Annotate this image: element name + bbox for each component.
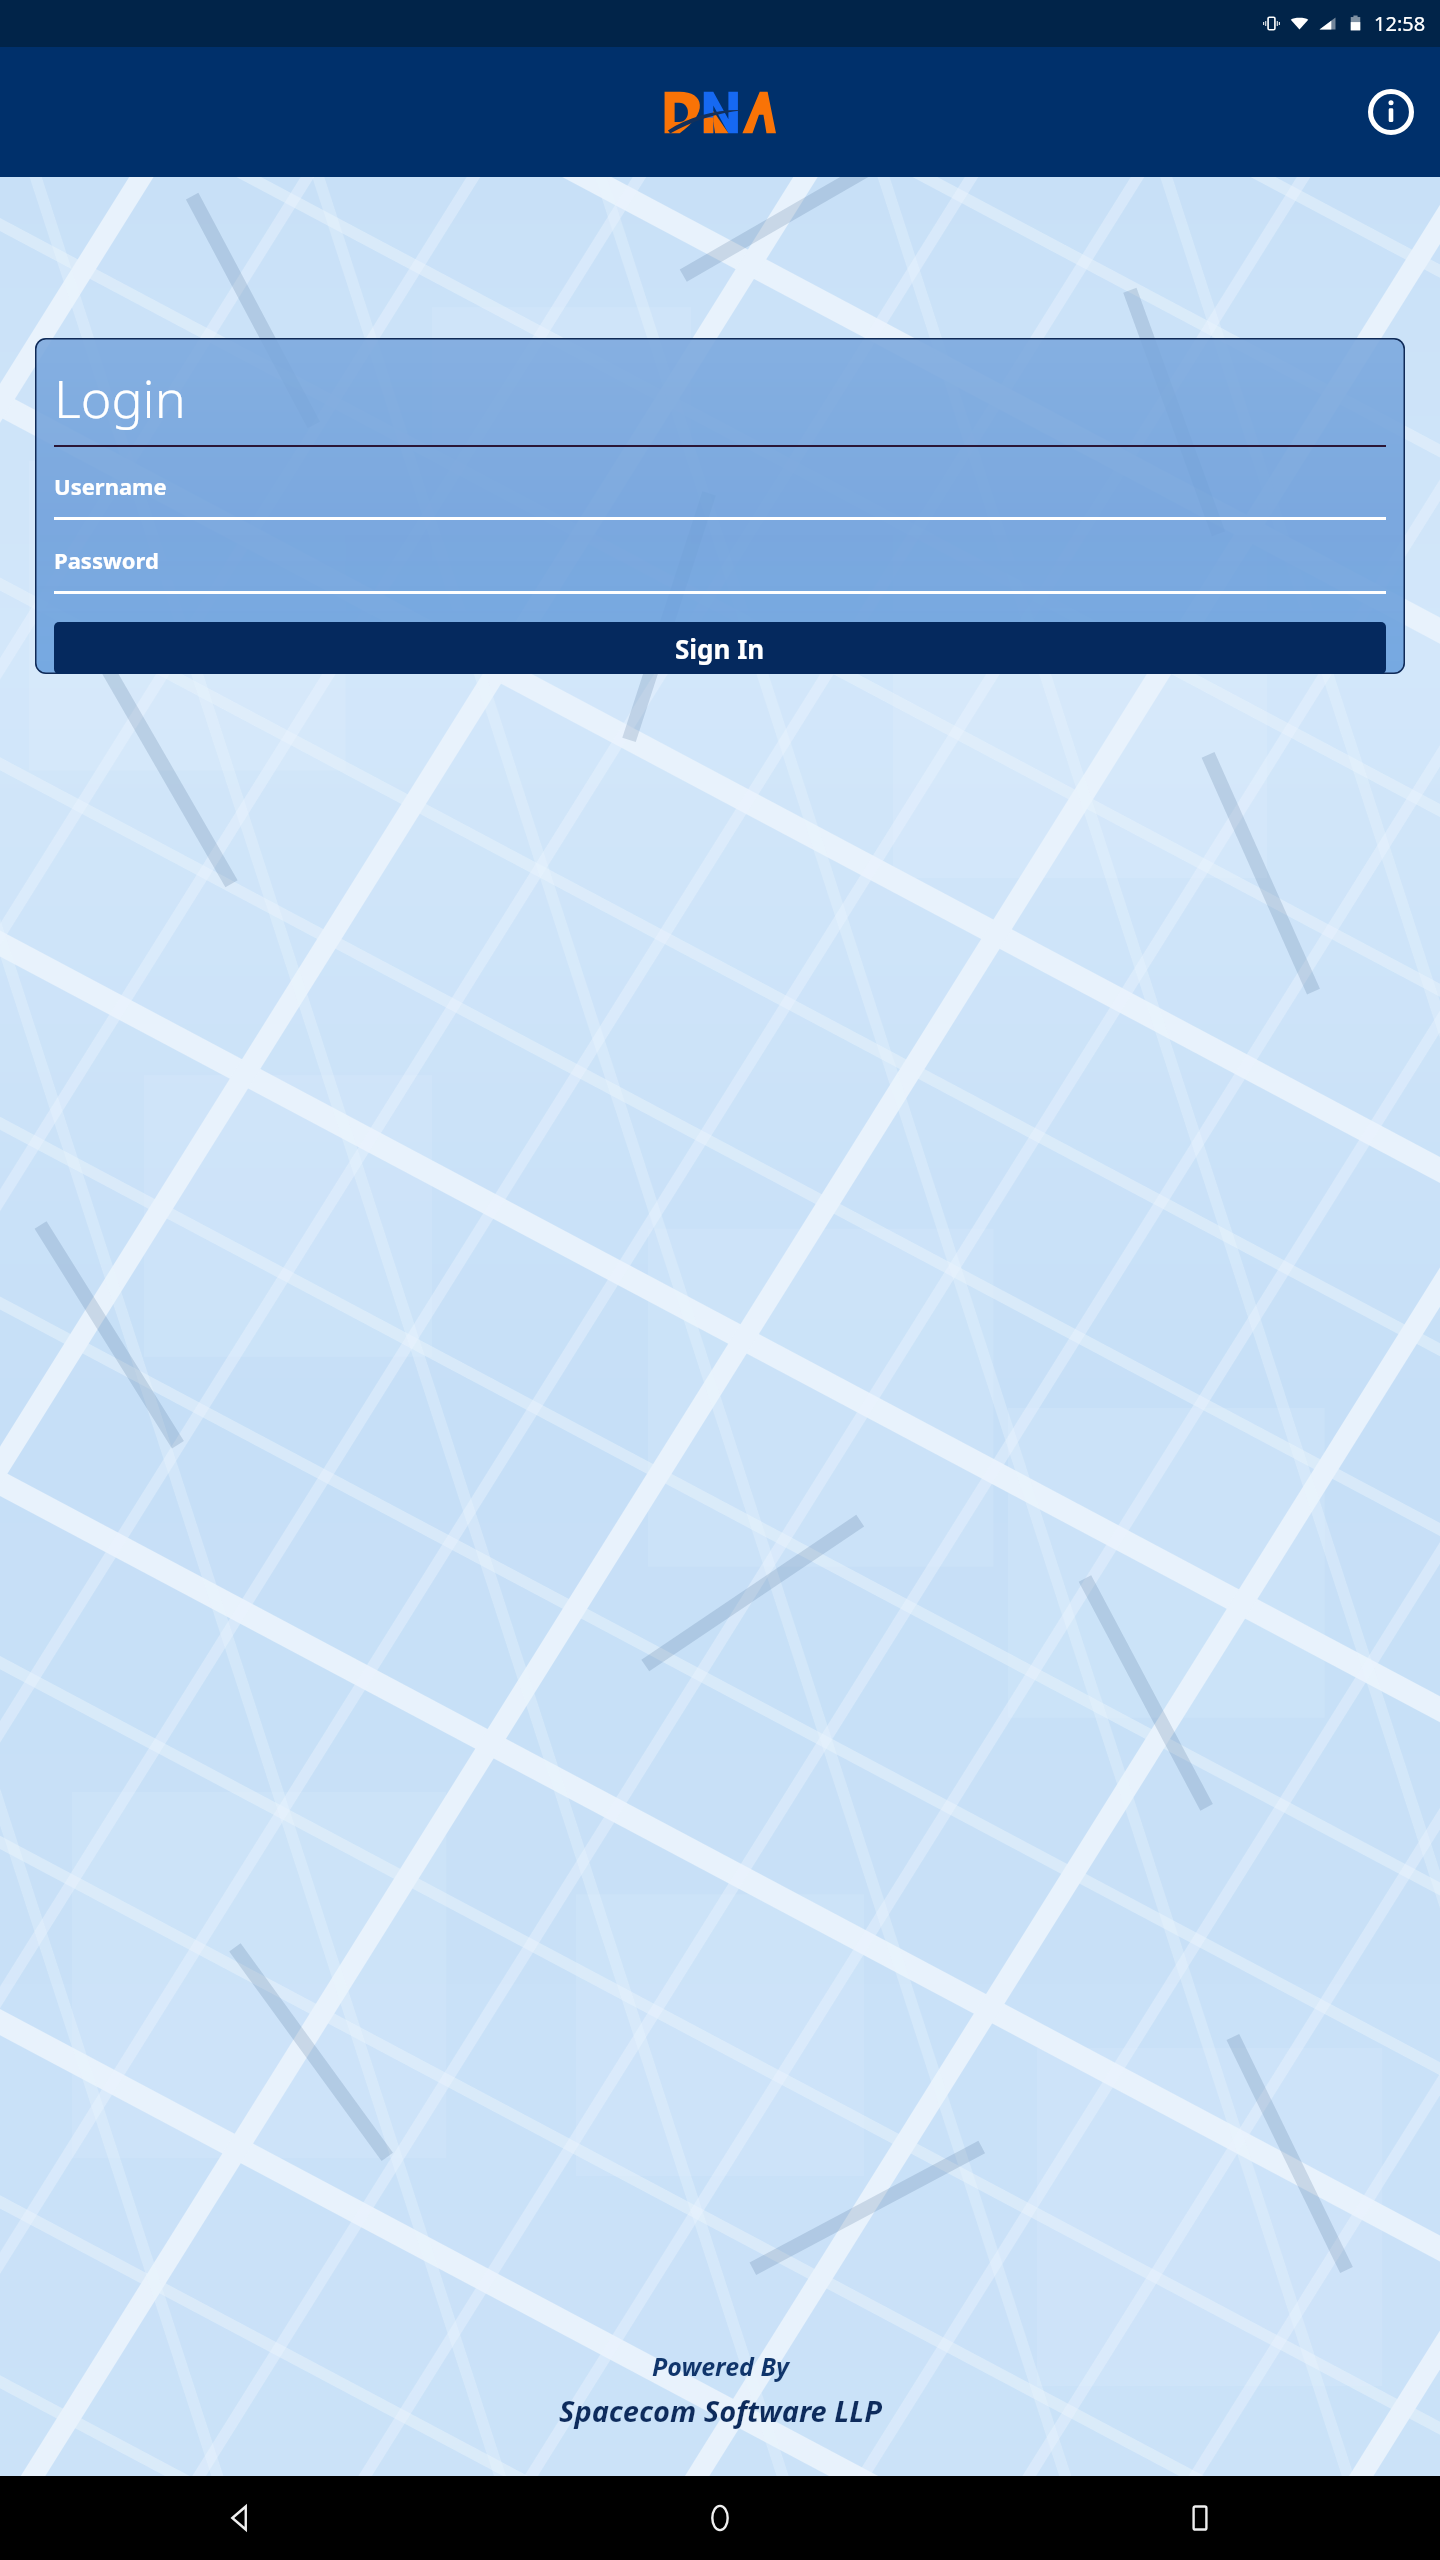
button[interactable]: Home (480, 2476, 960, 2560)
staticText: Powered By (652, 2349, 789, 2383)
staticText: Login (54, 362, 186, 433)
staticText: Sign In (675, 631, 765, 666)
button[interactable]: Password (54, 545, 1386, 594)
staticText: Spacecom Software LLP (559, 2391, 882, 2430)
button[interactable]: Username (54, 471, 1386, 520)
staticText: Username (54, 471, 167, 501)
button[interactable]: Sign In (54, 622, 1386, 674)
button[interactable]: Recents (960, 2476, 1440, 2560)
staticText: Password (54, 545, 159, 575)
button[interactable]: Info (1360, 81, 1422, 143)
button[interactable]: Back (0, 2476, 480, 2560)
staticText: 12:58 (1374, 10, 1426, 37)
